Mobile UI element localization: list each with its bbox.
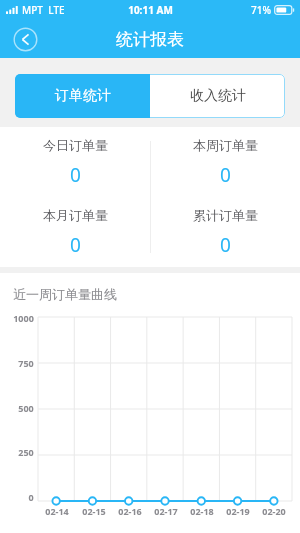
- staticText: 02-20: [262, 505, 286, 517]
- button[interactable]: 今日订单量: [0, 127, 150, 197]
- staticText: 0: [28, 491, 34, 501]
- staticText: 500: [18, 402, 34, 412]
- staticText: 累计订单量: [193, 207, 258, 223]
- staticText: MPT: [22, 3, 43, 17]
- button[interactable]: 本月订单量: [0, 197, 150, 267]
- staticText: 750: [18, 357, 34, 367]
- staticText: 统计报表: [116, 29, 184, 50]
- staticText: 近一周订单量曲线: [13, 286, 117, 302]
- staticText: 订单统计: [55, 87, 111, 105]
- staticText: 本月订单量: [43, 207, 108, 223]
- staticText: 250: [18, 446, 34, 456]
- button[interactable]: 收入统计: [150, 74, 285, 118]
- staticText: 今日订单量: [43, 137, 108, 153]
- staticText: 71%: [251, 3, 271, 17]
- staticText: 0: [220, 162, 231, 188]
- staticText: 02-15: [82, 505, 106, 517]
- staticText: 0: [70, 162, 81, 188]
- staticText: 1000: [13, 312, 34, 322]
- staticText: 收入统计: [190, 87, 246, 105]
- staticText: 02-17: [154, 505, 178, 517]
- button[interactable]: 订单统计: [15, 74, 150, 118]
- staticText: 本周订单量: [193, 137, 258, 153]
- staticText: 0: [220, 232, 231, 258]
- staticText: 0: [70, 232, 81, 258]
- staticText: 02-19: [226, 505, 250, 517]
- staticText: 02-18: [190, 505, 214, 517]
- button[interactable]: 本周订单量: [150, 127, 300, 197]
- button[interactable]: 累计订单量: [150, 197, 300, 267]
- staticText: LTE: [48, 3, 65, 17]
- staticText: 02-14: [45, 505, 69, 517]
- staticText: 02-16: [118, 505, 142, 517]
- staticText: 10:11 AM: [128, 3, 173, 17]
- button[interactable]: Back: [9, 23, 41, 55]
